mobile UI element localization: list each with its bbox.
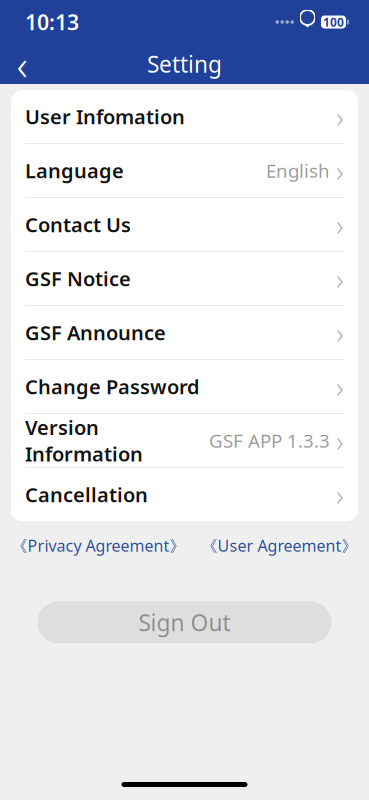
staticText: ›	[336, 97, 344, 136]
staticText: Cancellation	[25, 481, 148, 508]
staticText: Sign Out	[138, 607, 230, 637]
staticText: 《User Agreement》	[201, 535, 357, 556]
button[interactable]: Version Information	[11, 414, 358, 468]
staticText: Version Information	[25, 414, 143, 467]
button[interactable]: Change Password	[11, 360, 358, 414]
button[interactable]: User Infomation	[11, 90, 358, 144]
staticText: ›	[336, 367, 344, 406]
staticText: ›	[336, 421, 344, 460]
staticText: 100	[323, 14, 344, 30]
button[interactable]: 《Privacy Agreement》	[11, 532, 185, 559]
staticText: Language	[25, 157, 124, 184]
staticText: Contact Us	[25, 211, 131, 238]
staticText: Change Password	[25, 373, 200, 400]
staticText: ›	[336, 151, 344, 190]
button[interactable]: Sign Out	[37, 601, 331, 643]
button[interactable]: Back	[0, 44, 44, 84]
button[interactable]: Contact Us	[11, 198, 358, 252]
staticText: ›	[336, 313, 344, 352]
button[interactable]: GSF Announce	[11, 306, 358, 360]
button[interactable]: Language	[11, 144, 358, 198]
staticText: GSF Notice	[25, 265, 131, 292]
button[interactable]: 《User Agreement》	[201, 532, 357, 559]
staticText: ›	[336, 475, 344, 514]
staticText: 10:13	[25, 8, 79, 36]
button[interactable]: Cancellation	[11, 468, 358, 521]
staticText: ›	[336, 205, 344, 244]
staticText: User Infomation	[25, 103, 185, 130]
staticText: Setting	[147, 49, 222, 79]
staticText: GSF Announce	[25, 319, 166, 346]
staticText: 《Privacy Agreement》	[11, 535, 185, 556]
button[interactable]: GSF Notice	[11, 252, 358, 306]
staticText: GSF APP 1.3.3	[209, 428, 330, 453]
staticText: ›	[336, 259, 344, 298]
staticText: English	[266, 158, 330, 183]
staticText: ‹	[16, 36, 27, 92]
